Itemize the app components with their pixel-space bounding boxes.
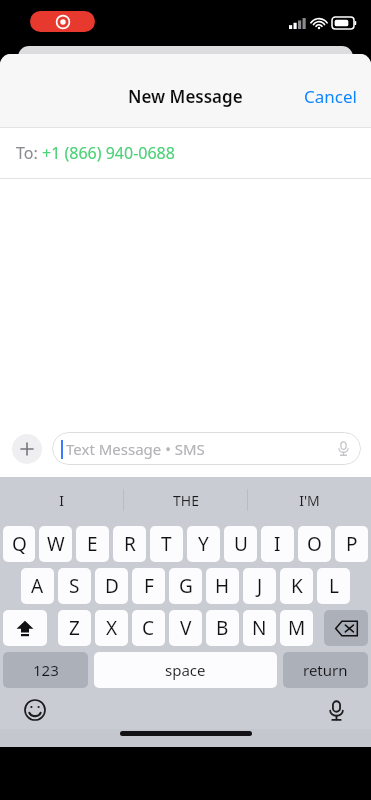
staticText: S bbox=[69, 573, 80, 599]
staticText: Text Message • SMS bbox=[66, 439, 205, 459]
button[interactable]: C bbox=[132, 610, 165, 646]
staticText: J bbox=[257, 573, 263, 599]
button[interactable]: 123 bbox=[3, 652, 88, 688]
button[interactable]: I bbox=[0, 480, 123, 520]
button[interactable]: Y bbox=[187, 526, 220, 562]
button[interactable]: A bbox=[21, 568, 54, 604]
button[interactable]: N bbox=[243, 610, 276, 646]
button[interactable]: E bbox=[76, 526, 109, 562]
staticText: W bbox=[47, 531, 65, 557]
staticText: New Message bbox=[128, 85, 243, 108]
button[interactable]: P bbox=[335, 526, 368, 562]
button[interactable]: Z bbox=[58, 610, 91, 646]
staticText: Cancel bbox=[304, 85, 357, 108]
staticText: E bbox=[87, 531, 98, 557]
button[interactable]: M bbox=[280, 610, 313, 646]
button[interactable]: H bbox=[206, 568, 239, 604]
button[interactable]: Emoji bbox=[23, 698, 47, 722]
button[interactable]: THE bbox=[124, 480, 247, 520]
button[interactable]: Shift bbox=[3, 610, 47, 646]
staticText: H bbox=[215, 573, 230, 599]
staticText: Q bbox=[12, 531, 27, 557]
button[interactable]: Dictation bbox=[324, 698, 348, 722]
staticText: L bbox=[329, 573, 339, 599]
staticText: space bbox=[165, 660, 206, 680]
staticText: X bbox=[106, 615, 118, 641]
staticText: Y bbox=[198, 531, 209, 557]
staticText: I bbox=[274, 531, 281, 557]
staticText: F bbox=[144, 573, 154, 599]
button[interactable]: K bbox=[280, 568, 313, 604]
staticText: +1 (866) 940-0688 bbox=[42, 142, 175, 164]
staticText: M bbox=[288, 615, 306, 641]
button[interactable]: Backspace bbox=[324, 610, 368, 646]
staticText: K bbox=[291, 573, 303, 599]
button[interactable]: Text Message • SMS bbox=[52, 432, 361, 465]
staticText: O bbox=[307, 531, 322, 557]
button[interactable]: space bbox=[94, 652, 277, 688]
button[interactable]: L bbox=[317, 568, 350, 604]
staticText: To: bbox=[16, 142, 42, 164]
staticText: B bbox=[216, 615, 229, 641]
button[interactable]: S bbox=[58, 568, 91, 604]
button[interactable]: Q bbox=[3, 526, 35, 562]
button[interactable]: B bbox=[206, 610, 239, 646]
staticText: THE bbox=[173, 491, 199, 510]
button[interactable]: T bbox=[150, 526, 183, 562]
other: Dictate bbox=[336, 441, 351, 456]
button[interactable]: Cancel bbox=[290, 79, 371, 114]
button[interactable]: R bbox=[113, 526, 146, 562]
button[interactable]: X bbox=[95, 610, 128, 646]
staticText: N bbox=[252, 615, 267, 641]
staticText: I bbox=[59, 491, 64, 510]
staticText: Z bbox=[69, 615, 80, 641]
button[interactable]: J bbox=[243, 568, 276, 604]
button[interactable]: I'M bbox=[248, 480, 371, 520]
staticText: U bbox=[234, 531, 248, 557]
button[interactable]: O bbox=[298, 526, 331, 562]
staticText: D bbox=[105, 573, 119, 599]
button[interactable]: Add attachment bbox=[12, 434, 42, 464]
button[interactable]: V bbox=[169, 610, 202, 646]
button[interactable]: F bbox=[132, 568, 165, 604]
button[interactable]: G bbox=[169, 568, 202, 604]
staticText: 123 bbox=[33, 660, 59, 680]
staticText: I'M bbox=[299, 491, 320, 510]
button[interactable]: W bbox=[39, 526, 72, 562]
staticText: A bbox=[31, 573, 44, 599]
staticText: T bbox=[161, 531, 172, 557]
staticText: return bbox=[303, 660, 348, 680]
button[interactable]: D bbox=[95, 568, 128, 604]
button[interactable]: U bbox=[224, 526, 257, 562]
button[interactable]: To: bbox=[0, 128, 371, 178]
staticText: P bbox=[346, 531, 358, 557]
staticText: C bbox=[142, 615, 155, 641]
staticText: V bbox=[180, 615, 192, 641]
staticText: R bbox=[124, 531, 136, 557]
button[interactable]: return bbox=[283, 652, 368, 688]
staticText: G bbox=[179, 573, 193, 599]
button[interactable]: I bbox=[261, 526, 294, 562]
button[interactable]: Recording bbox=[30, 11, 95, 32]
